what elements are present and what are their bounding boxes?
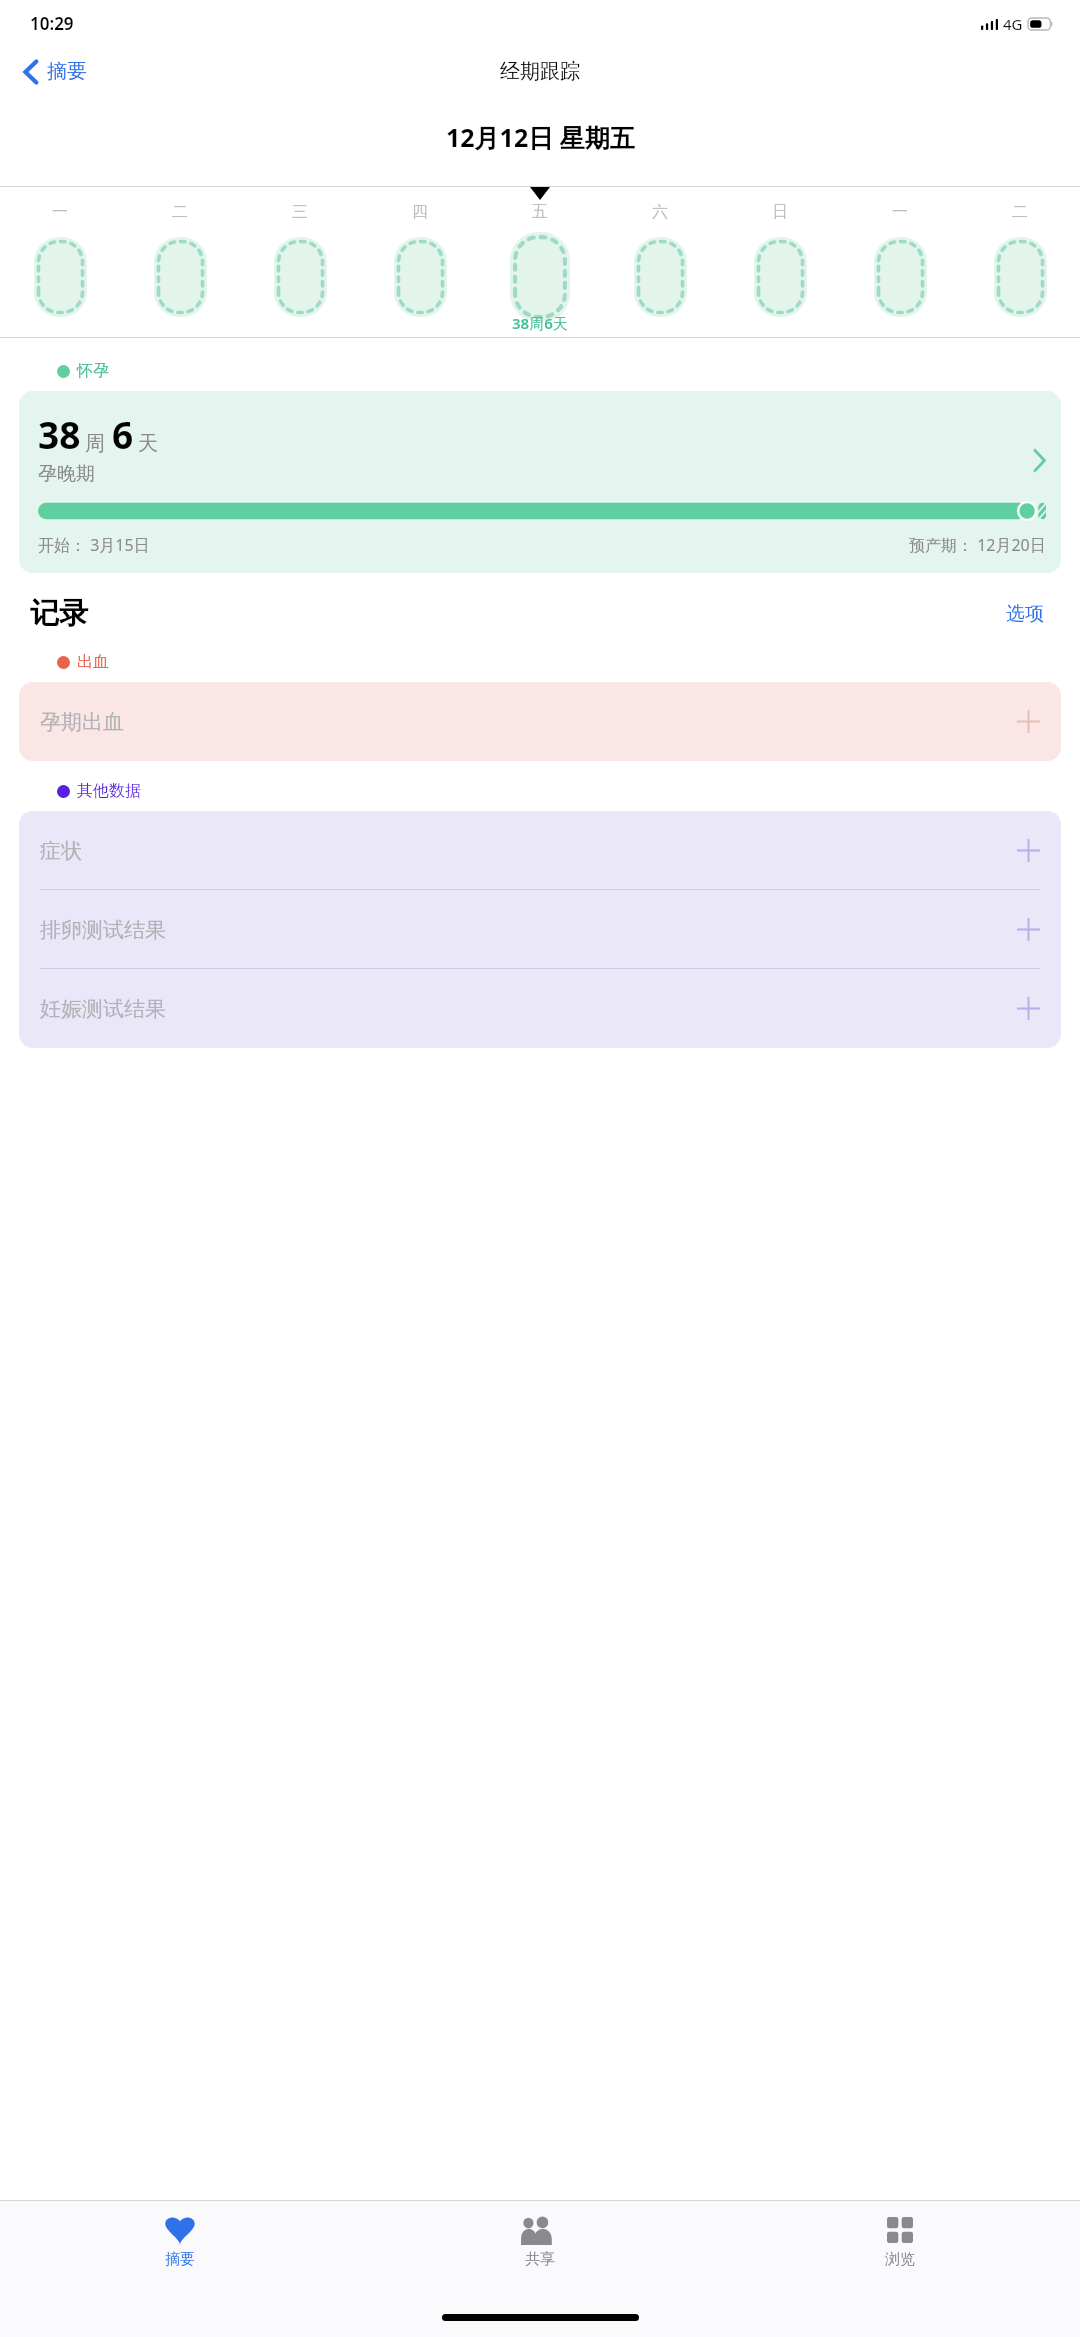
staticText: 妊娠测试结果 — [40, 996, 166, 1022]
staticText: 排卵测试结果 — [40, 917, 166, 943]
staticText: 选项 — [1006, 602, 1044, 626]
button[interactable]: 38 — [19, 391, 1061, 573]
other: Add — [1017, 839, 1040, 862]
staticText: 二 — [172, 202, 188, 222]
button[interactable]: 妊娠测试结果 — [19, 969, 1061, 1048]
staticText: 怀孕 — [77, 361, 109, 381]
button[interactable]: 浏览 — [720, 2201, 1080, 2269]
staticText: 孕期出血 — [40, 709, 124, 735]
staticText: 三 — [292, 202, 308, 222]
button[interactable]: 排卵测试结果 — [19, 890, 1061, 969]
other: Add — [1017, 997, 1040, 1020]
staticText: 周 — [85, 431, 105, 456]
other: Add — [1017, 710, 1040, 733]
staticText: 出血 — [77, 652, 109, 672]
staticText: 预产期： 12月20日 — [909, 534, 1046, 556]
button[interactable]: 摘要 — [18, 53, 93, 90]
button[interactable]: 选项 — [1000, 596, 1050, 632]
staticText: 经期跟踪 — [500, 59, 580, 84]
staticText: 四 — [412, 202, 428, 222]
staticText: 共享 — [525, 2250, 555, 2269]
button[interactable]: 孕期出血 — [19, 682, 1061, 761]
staticText: 天 — [138, 431, 158, 456]
staticText: 日 — [772, 202, 788, 222]
other: Add — [1017, 918, 1040, 941]
button[interactable]: 症状 — [19, 811, 1061, 890]
staticText: 浏览 — [885, 2250, 915, 2269]
staticText: 症状 — [40, 838, 82, 864]
staticText: 摘要 — [47, 59, 87, 84]
button[interactable]: 共享 — [360, 2201, 720, 2269]
staticText: 摘要 — [165, 2250, 195, 2269]
staticText: 一 — [52, 202, 68, 222]
staticText: 12月12日 星期五 — [446, 120, 635, 154]
staticText: 五 — [532, 202, 548, 222]
staticText: 38 — [38, 409, 81, 459]
staticText: 4G — [1003, 14, 1023, 34]
staticText: 孕晚期 — [38, 462, 95, 486]
staticText: 38周6天 — [512, 313, 568, 333]
button[interactable]: 摘要 — [0, 2201, 360, 2269]
staticText: 二 — [1012, 202, 1028, 222]
staticText: 其他数据 — [77, 781, 141, 801]
staticText: 10:29 — [30, 12, 74, 35]
staticText: 记录 — [30, 595, 88, 632]
staticText: 6 — [112, 409, 134, 459]
staticText: 一 — [892, 202, 908, 222]
staticText: 开始： 3月15日 — [38, 534, 150, 556]
staticText: 六 — [652, 202, 668, 222]
